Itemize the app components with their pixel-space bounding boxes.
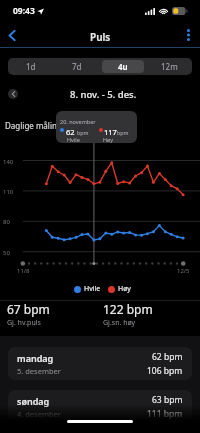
button[interactable]: søndag (8, 390, 192, 423)
staticText: 50 (3, 249, 10, 257)
button[interactable]: Back (0, 23, 24, 47)
staticText: søndag (17, 395, 50, 407)
staticText: 20. november (60, 118, 96, 125)
staticText: Høy (118, 284, 131, 294)
staticText: 4u (118, 61, 128, 72)
staticText: 110 (3, 188, 14, 196)
staticText: Gj. hv.puls (7, 318, 41, 328)
staticText: mandag (17, 352, 54, 364)
button[interactable]: 1d (10, 60, 52, 73)
staticText: 106 bpm (147, 365, 183, 377)
staticText: 117 (104, 127, 117, 137)
staticText: bpm (77, 129, 89, 136)
staticText: 1d (26, 61, 36, 72)
staticText: 62 (66, 127, 75, 137)
staticText: Høy (103, 136, 114, 143)
staticText: Puls (90, 30, 111, 44)
staticText: 122 bpm (103, 301, 153, 317)
button[interactable]: 12m (148, 60, 190, 73)
staticText: 11/8 (17, 267, 30, 275)
button[interactable]: mandag (8, 347, 192, 380)
staticText: 8. nov. - 5. des. (70, 88, 137, 101)
staticText: 7d (72, 61, 82, 72)
staticText: bpm (117, 129, 129, 136)
button[interactable]: 7d (56, 60, 98, 73)
button[interactable]: Previous period (8, 89, 18, 99)
staticText: 12/5 (177, 267, 190, 275)
staticText: Hvile (67, 136, 80, 143)
staticText: 80 (3, 218, 10, 226)
staticText: Daglige målinger (5, 120, 70, 131)
staticText: 09:43 (13, 5, 35, 17)
button[interactable]: 4u (102, 60, 144, 73)
staticText: 140 (3, 158, 14, 166)
staticText: Hvile (84, 284, 101, 294)
staticText: Gj.sn. høy (103, 318, 136, 328)
staticText: 5. desember (17, 366, 61, 376)
staticText: 12m (161, 61, 178, 72)
button[interactable]: More options (176, 23, 200, 47)
staticText: 4. desember (17, 409, 61, 419)
staticText: 63 bpm (152, 394, 183, 406)
staticText: 62 bpm (152, 351, 183, 363)
staticText: 111 bpm (147, 408, 183, 420)
staticText: 67 bpm (7, 301, 50, 317)
